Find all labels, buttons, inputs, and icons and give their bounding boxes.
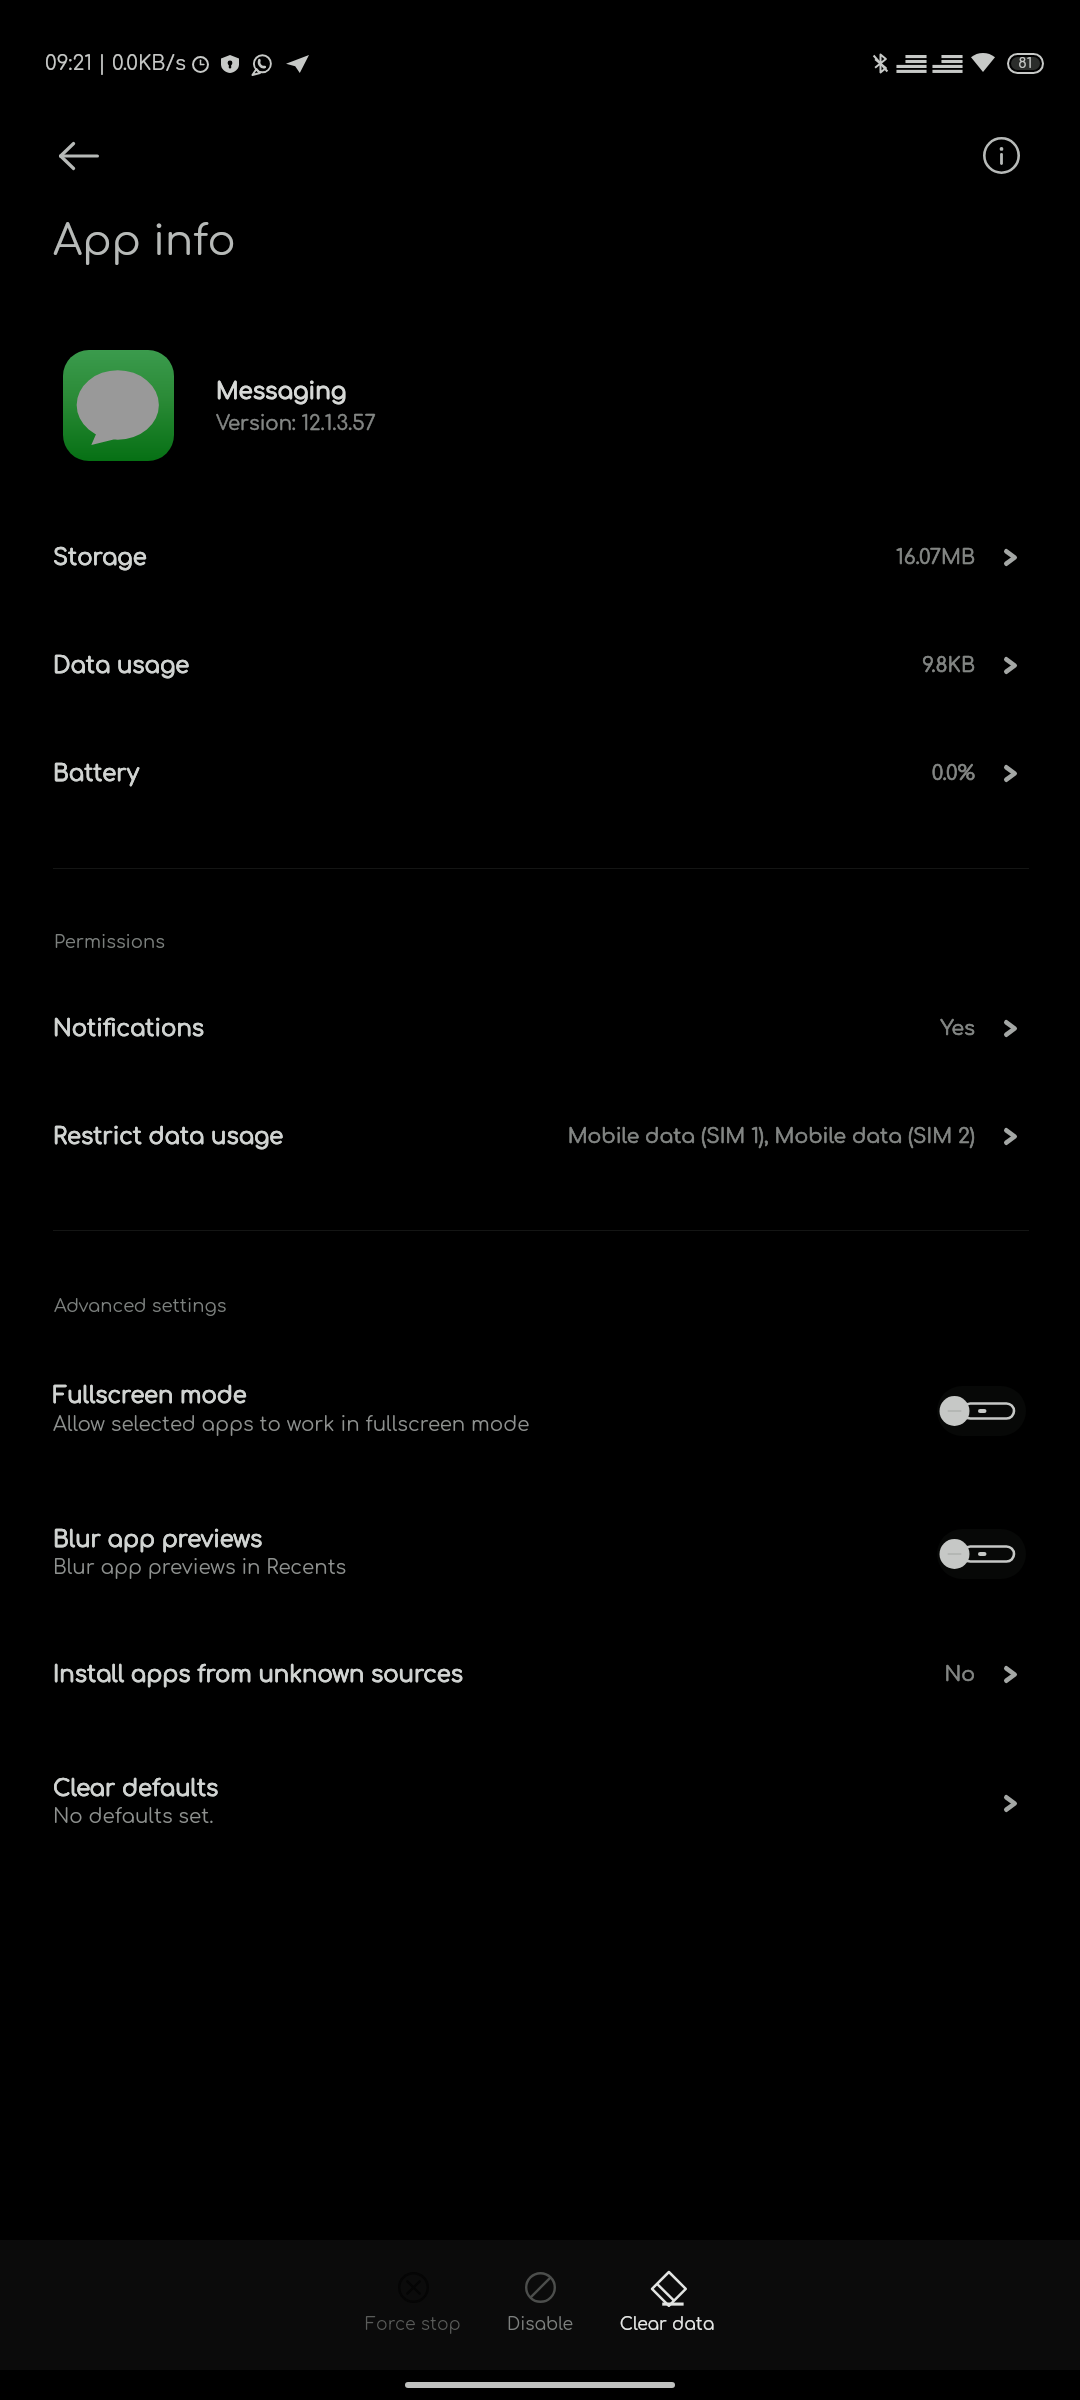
staticText: Restrict data usage: [53, 1124, 284, 1149]
staticText: 16.07MB: [0, 546, 975, 569]
button[interactable]: Clear data: [607, 2260, 727, 2350]
staticText: Mobile data (SIM 1), Mobile data (SIM 2): [0, 1125, 975, 1148]
button[interactable]: Blur app previews: [937, 1529, 1026, 1579]
button[interactable]: App details: [969, 123, 1034, 188]
button[interactable]: Data usage: [0, 611, 1080, 719]
staticText: Notifications: [53, 1016, 204, 1041]
staticText: Clear defaults: [53, 1776, 219, 1801]
staticText: Battery: [53, 761, 140, 786]
staticText: 9.8KB: [0, 654, 975, 677]
staticText: Version: 12.1.3.57: [216, 413, 376, 435]
staticText: Fullscreen mode: [53, 1383, 247, 1408]
staticText: 16.07MB: [0, 546, 975, 569]
staticText: Clear defaults: [53, 1776, 219, 1801]
staticText: Messaging: [216, 379, 347, 405]
staticText: Install apps from unknown sources: [53, 1662, 464, 1687]
staticText: Fullscreen mode: [53, 1383, 247, 1408]
staticText: Storage: [53, 545, 147, 570]
staticText: Messaging: [216, 379, 347, 405]
staticText: Battery: [53, 761, 140, 786]
staticText: No defaults set.: [53, 1806, 214, 1828]
staticText: Data usage: [53, 653, 190, 678]
button[interactable]: Storage: [0, 503, 1080, 611]
button[interactable]: Battery: [0, 719, 1080, 827]
staticText: Blur app previews: [53, 1527, 263, 1552]
staticText: Yes: [0, 1017, 975, 1040]
button[interactable]: Install apps from unknown sources: [0, 1620, 1080, 1728]
staticText: Advanced settings: [54, 1296, 227, 1316]
button[interactable]: Notifications: [0, 974, 1080, 1082]
staticText: Blur app previews: [53, 1527, 263, 1552]
staticText: Yes: [0, 1017, 975, 1040]
button[interactable]: Restrict data usage: [0, 1082, 1080, 1190]
staticText: Disable: [480, 2315, 600, 2334]
staticText: Install apps from unknown sources: [53, 1662, 464, 1687]
staticText: Permissions: [54, 932, 165, 952]
button[interactable]: Clear defaults: [0, 1746, 1080, 1860]
staticText: No: [0, 1663, 975, 1686]
staticText: Restrict data usage: [53, 1124, 284, 1149]
button[interactable]: Disable: [480, 2260, 600, 2350]
staticText: Storage: [53, 545, 147, 570]
button[interactable]: Force stop: [353, 2260, 473, 2350]
staticText: Force stop: [353, 2315, 473, 2334]
staticText: Data usage: [53, 653, 190, 678]
staticText: 0.0%: [0, 762, 975, 785]
staticText: 0.0%: [0, 762, 975, 785]
button[interactable]: Back: [47, 124, 111, 188]
staticText: Mobile data (SIM 1), Mobile data (SIM 2): [0, 1125, 975, 1148]
button[interactable]: Fullscreen mode: [937, 1386, 1026, 1436]
staticText: Clear data: [607, 2315, 727, 2334]
staticText: Allow selected apps to work in fullscree…: [53, 1414, 530, 1436]
staticText: App info: [53, 218, 236, 264]
staticText: Version: 12.1.3.57: [216, 413, 376, 435]
staticText: Notifications: [53, 1016, 204, 1041]
staticText: 9.8KB: [0, 654, 975, 677]
staticText: Blur app previews in Recents: [53, 1557, 347, 1579]
staticText: No: [0, 1663, 975, 1686]
staticText: 81: [0, 55, 1032, 71]
staticText: 09:21 | 0.0KB/s: [45, 52, 187, 75]
